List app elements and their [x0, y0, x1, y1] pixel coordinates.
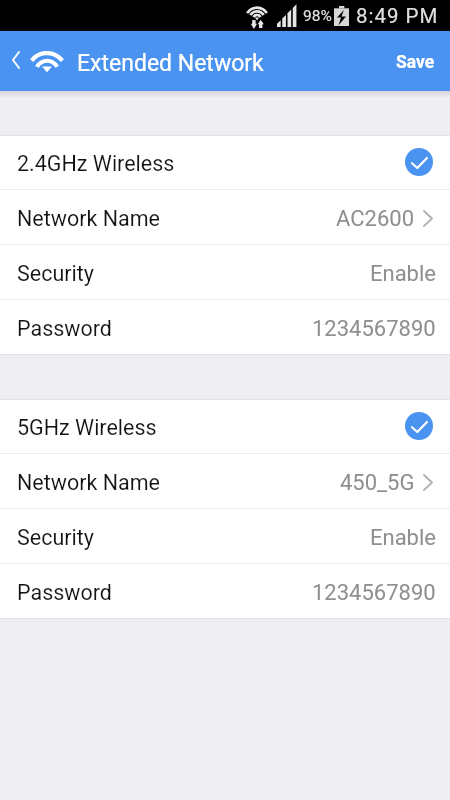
button[interactable]: Password [0, 300, 450, 355]
button[interactable]: Security [0, 245, 450, 300]
button[interactable]: Security [0, 509, 450, 564]
button[interactable]: Back [0, 31, 28, 91]
staticText: 8:49 PM [356, 4, 439, 28]
staticText: 98% [303, 7, 332, 25]
staticText: 450_5G [340, 470, 415, 496]
staticText: Password [17, 580, 112, 605]
staticText: Save [396, 52, 435, 73]
staticText: AC2600 [336, 206, 415, 232]
staticText: Security [17, 525, 94, 550]
staticText: 1234567890 [312, 580, 436, 606]
button[interactable]: 5GHz Wireless [0, 399, 450, 454]
staticText: Network Name [17, 470, 160, 495]
button[interactable]: Network Name [0, 190, 450, 245]
staticText: 5GHz Wireless [17, 415, 157, 440]
button[interactable]: Network Name [0, 454, 450, 509]
button[interactable]: Save [380, 31, 450, 91]
staticText: 1234567890 [312, 316, 436, 342]
staticText: Password [17, 316, 112, 341]
staticText: Network Name [17, 206, 160, 231]
button[interactable]: Password [0, 564, 450, 619]
staticText: Enable [370, 525, 436, 551]
staticText: 2.4GHz Wireless [17, 151, 175, 176]
staticText: Enable [370, 261, 436, 287]
button[interactable]: 2.4GHz Wireless [0, 135, 450, 190]
staticText: Extended Network [77, 50, 264, 77]
staticText: Security [17, 261, 94, 286]
